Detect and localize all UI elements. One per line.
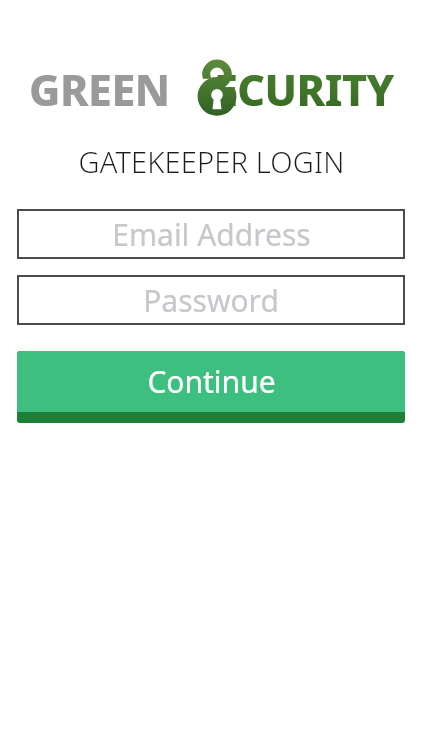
staticText: Continue [147, 361, 276, 402]
button[interactable]: Password [17, 275, 405, 325]
staticText: GREEN [29, 60, 170, 119]
button[interactable]: Continue [17, 351, 405, 423]
staticText: Password [143, 280, 279, 321]
button[interactable]: Email Address [17, 209, 405, 259]
staticText: Email Address [112, 214, 311, 255]
staticText: GATEKEEPER LOGIN [78, 142, 345, 181]
staticText: ECURITY [214, 60, 394, 119]
